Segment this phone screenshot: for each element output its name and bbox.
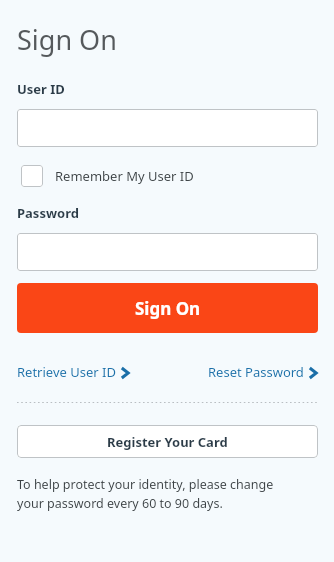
staticText: To help protect your identity, please ch…: [17, 476, 282, 512]
staticText: Reset Password: [208, 363, 304, 381]
button[interactable]: Register Your Card: [17, 425, 318, 458]
staticText: Remember My User ID: [55, 167, 194, 185]
button[interactable]: [17, 109, 318, 147]
staticText: Sign On: [135, 297, 201, 320]
staticText: Register Your Card: [107, 433, 228, 451]
staticText: User ID: [17, 80, 65, 98]
button[interactable]: [17, 233, 318, 271]
staticText: Password: [17, 204, 79, 222]
button[interactable]: Retrieve User ID: [17, 363, 130, 381]
button[interactable]: Reset Password: [208, 363, 318, 381]
button[interactable]: Remember My User ID: [17, 162, 194, 190]
button[interactable]: Sign On: [17, 283, 318, 333]
staticText: Retrieve User ID: [17, 363, 116, 381]
staticText: Sign On: [17, 21, 117, 58]
